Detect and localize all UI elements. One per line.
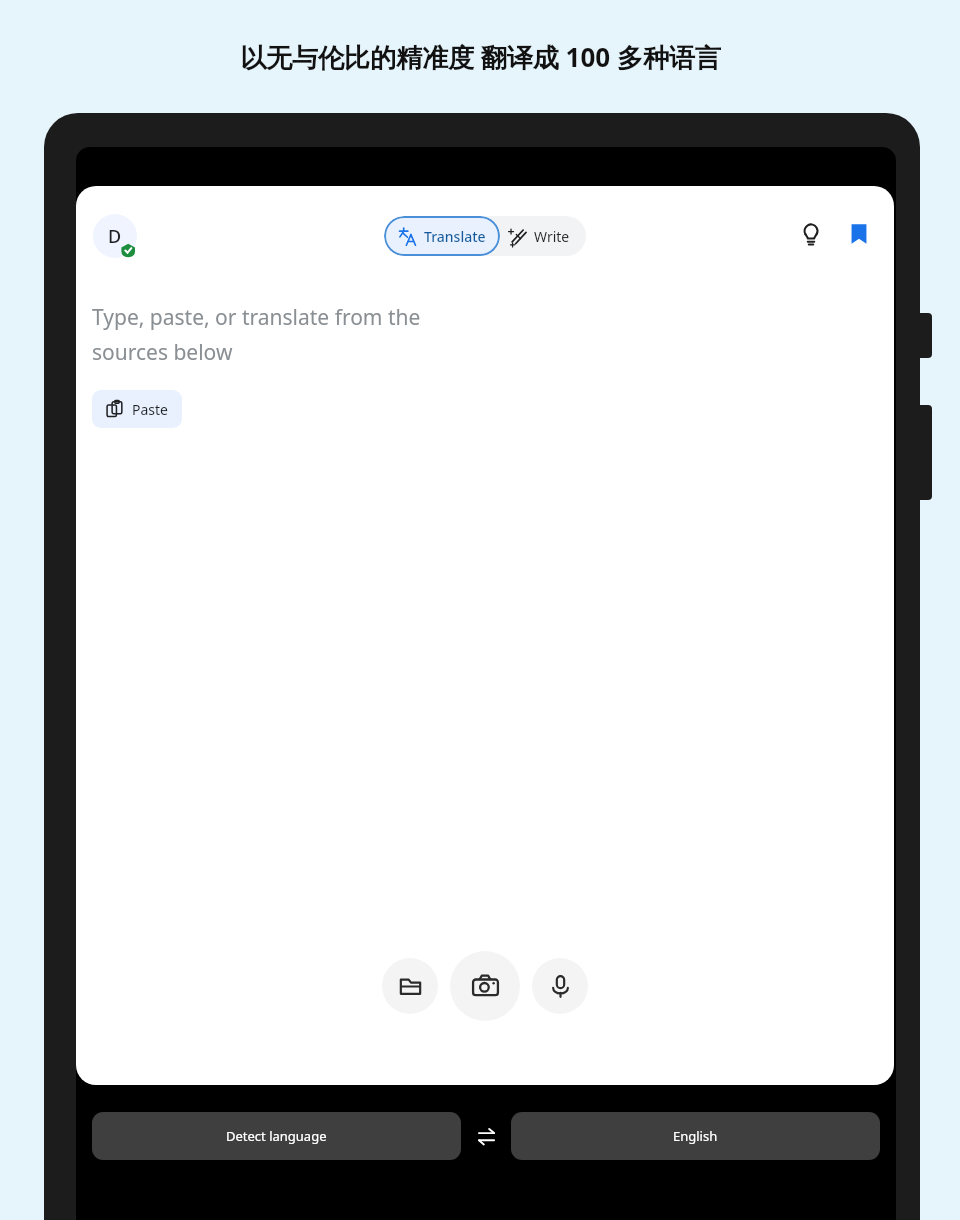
staticText: Type, paste, or translate from the sourc… — [92, 303, 421, 367]
button[interactable]: Swap languages — [461, 1112, 511, 1160]
button[interactable]: Camera — [450, 951, 520, 1021]
staticText: Detect language — [226, 1127, 327, 1145]
button[interactable]: Voice input — [532, 958, 588, 1014]
button[interactable]: Saved — [837, 212, 881, 256]
button[interactable]: Tips — [789, 212, 833, 256]
button[interactable]: Account — [93, 214, 137, 258]
button[interactable]: English — [511, 1112, 880, 1160]
staticText: Paste — [132, 400, 168, 419]
staticText: D — [108, 224, 122, 249]
staticText: 以无与伦比的精准度 翻译成 100 多种语言 — [240, 39, 721, 75]
button[interactable]: Paste — [92, 390, 182, 428]
staticText: Write — [534, 227, 570, 246]
staticText: English — [673, 1127, 718, 1145]
staticText: Translate — [424, 227, 486, 246]
button[interactable]: Documents — [382, 958, 438, 1014]
button[interactable]: Detect language — [92, 1112, 461, 1160]
button[interactable]: Write — [500, 216, 586, 256]
button[interactable]: Translate — [384, 216, 500, 256]
